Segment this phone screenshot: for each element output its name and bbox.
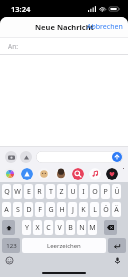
staticText: M (89, 223, 96, 233)
staticText: I (82, 187, 85, 197)
staticText: S (16, 205, 20, 215)
button[interactable]: iMessage apps (20, 151, 32, 163)
button[interactable]: Ä (112, 202, 121, 217)
button[interactable]: App 0 (4, 168, 16, 180)
button[interactable]: Ü (112, 184, 121, 199)
button[interactable]: 123 (2, 238, 20, 253)
button[interactable]: App 6 (106, 168, 118, 180)
staticText: Ö (103, 205, 109, 215)
button[interactable]: App 1 (21, 168, 33, 180)
button[interactable]: S (13, 202, 22, 217)
staticText: G (48, 205, 54, 215)
staticText: Y (25, 223, 29, 233)
staticText: F (38, 205, 42, 215)
button[interactable]: V (55, 220, 64, 235)
staticText: Z (59, 187, 64, 197)
button[interactable]: Y (22, 220, 31, 235)
staticText: B (68, 223, 73, 233)
staticText: T (49, 187, 53, 197)
button[interactable]: Q (2, 184, 11, 199)
staticText: H (59, 205, 65, 215)
staticText: O (92, 187, 98, 197)
staticText: Ü (114, 187, 120, 197)
button[interactable]: Dictate (113, 256, 122, 265)
button[interactable]: Shift (2, 220, 15, 235)
staticText: P (103, 187, 108, 197)
button[interactable]: R (35, 184, 44, 199)
button[interactable]: U (68, 184, 77, 199)
button[interactable]: K (79, 202, 88, 217)
staticText: K (81, 205, 86, 215)
button[interactable]: B (66, 220, 75, 235)
button[interactable]: Emoji (5, 256, 14, 265)
staticText: J (72, 205, 74, 215)
button[interactable]: M (88, 220, 97, 235)
button[interactable]: G (46, 202, 55, 217)
button[interactable]: J (68, 202, 77, 217)
staticText: An: (8, 42, 18, 51)
button[interactable]: E (24, 184, 33, 199)
button[interactable]: App 3 (55, 168, 67, 180)
button[interactable]: App 5 (89, 168, 101, 180)
staticText: R (37, 187, 42, 197)
staticText: Abbrechen (87, 22, 123, 32)
button[interactable]: App 4 (72, 168, 84, 180)
staticText: L (93, 205, 97, 215)
button[interactable]: Delete (104, 220, 117, 235)
staticText: W (14, 187, 21, 197)
button[interactable]: App 2 (38, 168, 50, 180)
staticText: Leerzeichen (47, 242, 81, 250)
button[interactable]: A (2, 202, 11, 217)
staticText: C (46, 223, 51, 233)
staticText: Neue Nachricht (35, 22, 94, 32)
button[interactable]: L (90, 202, 99, 217)
button[interactable]: I (79, 184, 88, 199)
button[interactable]: An: (0, 38, 128, 54)
button[interactable]: W (13, 184, 22, 199)
button[interactable]: Return (108, 238, 126, 253)
staticText: N (79, 223, 85, 233)
button[interactable]: Ö (101, 202, 110, 217)
button[interactable]: F (35, 202, 44, 217)
button[interactable]: Camera (5, 151, 17, 163)
button[interactable]: P (101, 184, 110, 199)
staticText: E (27, 187, 31, 197)
button[interactable]: App 7 (123, 168, 124, 180)
staticText: A (4, 205, 9, 215)
button[interactable]: N (77, 220, 86, 235)
button[interactable]: Z (57, 184, 66, 199)
button[interactable]: Leerzeichen (22, 238, 106, 253)
button[interactable]: C (44, 220, 53, 235)
staticText: Q (4, 187, 10, 197)
button[interactable]: Abbrechen (82, 19, 128, 35)
staticText: V (57, 223, 62, 233)
button[interactable]: O (90, 184, 99, 199)
staticText: D (26, 205, 32, 215)
button[interactable]: T (46, 184, 55, 199)
staticText: U (70, 187, 76, 197)
staticText: 13:24 (11, 4, 31, 14)
button[interactable]: H (57, 202, 66, 217)
staticText: X (35, 223, 40, 233)
button[interactable]: D (24, 202, 33, 217)
button[interactable]: Send (36, 151, 123, 163)
button[interactable]: X (33, 220, 42, 235)
staticText: Ä (114, 205, 119, 215)
staticText: 123 (6, 242, 17, 250)
button[interactable]: Send (112, 152, 122, 162)
